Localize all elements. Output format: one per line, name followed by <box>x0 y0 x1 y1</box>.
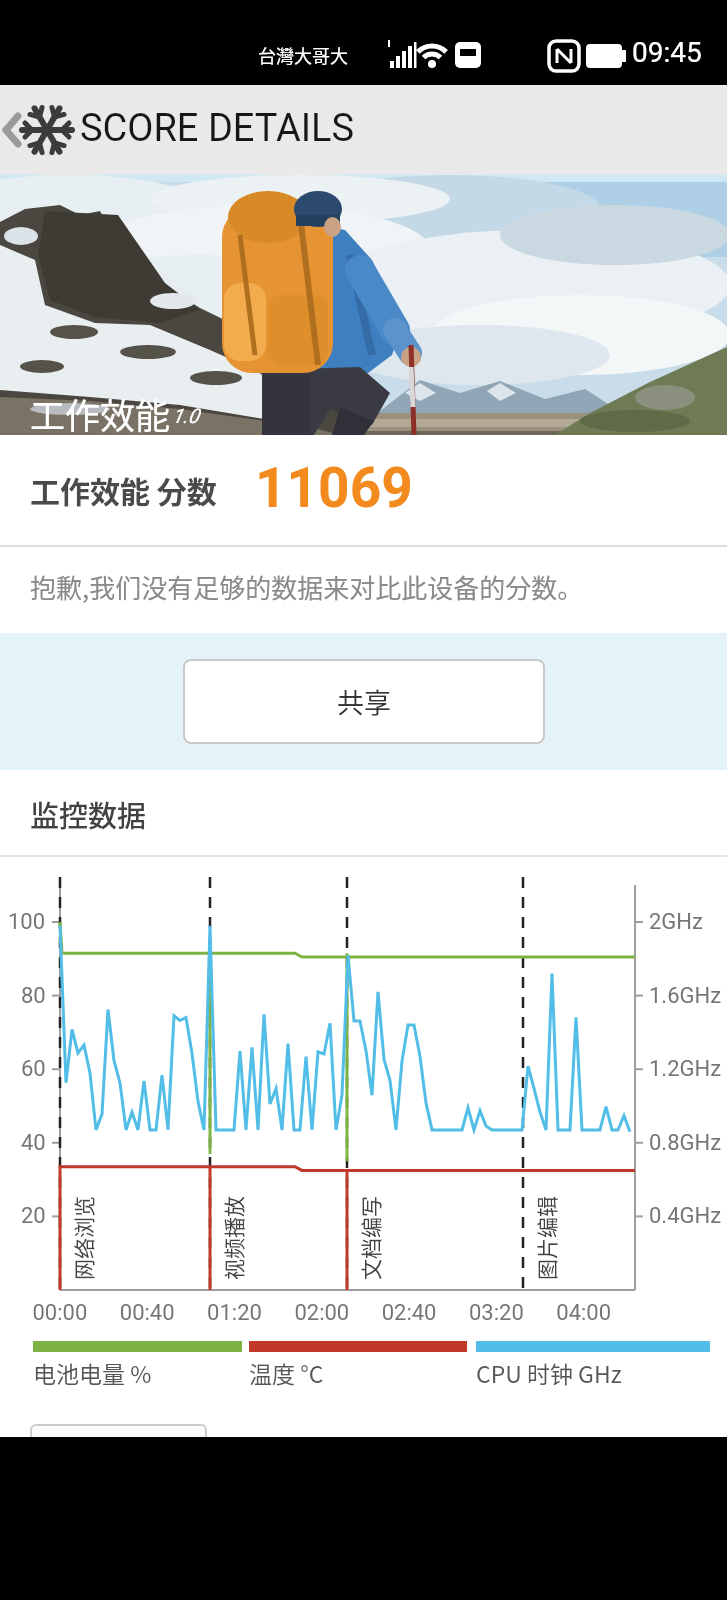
staticText: 共享 <box>337 682 391 721</box>
staticText: 11069 <box>255 456 413 520</box>
staticText: 温度 °C <box>249 1356 324 1389</box>
staticText: 工作效能 <box>30 388 171 439</box>
staticText: 电池电量 % <box>33 1356 152 1389</box>
staticText: 台灣大哥大 <box>258 42 348 68</box>
staticText: 工作效能 分数 <box>30 468 217 511</box>
staticText: 09:45 <box>632 36 702 69</box>
staticText: 抱歉,我们没有足够的数据来对比此设备的分数。 <box>30 568 584 606</box>
staticText: 1.0 <box>172 404 199 427</box>
staticText: CPU 时钟 GHz <box>476 1356 622 1389</box>
staticText: 监控数据 <box>30 793 147 835</box>
staticText: SCORE DETAILS <box>80 106 355 151</box>
